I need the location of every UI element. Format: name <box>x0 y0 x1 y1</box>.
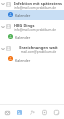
staticText: Kalender <box>15 58 31 63</box>
button[interactable]: Kalender <box>0 10 64 20</box>
staticText: Infektion mit spätestens die Arbeit <box>14 1 63 6</box>
button[interactable]: Collapse message <box>0 0 6 7</box>
staticText: Kalender <box>15 13 31 18</box>
button[interactable]: Clipboard <box>40 108 49 117</box>
button[interactable]: Collapse message <box>0 45 6 52</box>
staticText: info@mail.com praktikum.de schon <box>14 6 63 10</box>
button[interactable]: Collapse message <box>0 20 64 32</box>
staticText: Erzeichnungen wait <box>14 45 63 50</box>
staticText: info@mail.com praktikum.de <box>14 28 63 32</box>
button[interactable]: Attach <box>28 108 37 117</box>
button[interactable]: Collapse message <box>0 0 64 10</box>
button[interactable]: Mail <box>3 108 12 117</box>
staticText: Kalender <box>15 35 31 40</box>
button[interactable]: Photos <box>15 108 24 117</box>
button[interactable]: Collapse message <box>0 42 64 54</box>
button[interactable]: Documents <box>52 108 61 117</box>
button[interactable]: Kalender <box>0 32 64 42</box>
button[interactable]: Collapse message <box>0 23 6 30</box>
button[interactable]: Kalender <box>0 54 64 64</box>
staticText: HBG Dings <box>14 23 63 28</box>
staticText: mail.com@praktikum.de <box>14 50 63 54</box>
